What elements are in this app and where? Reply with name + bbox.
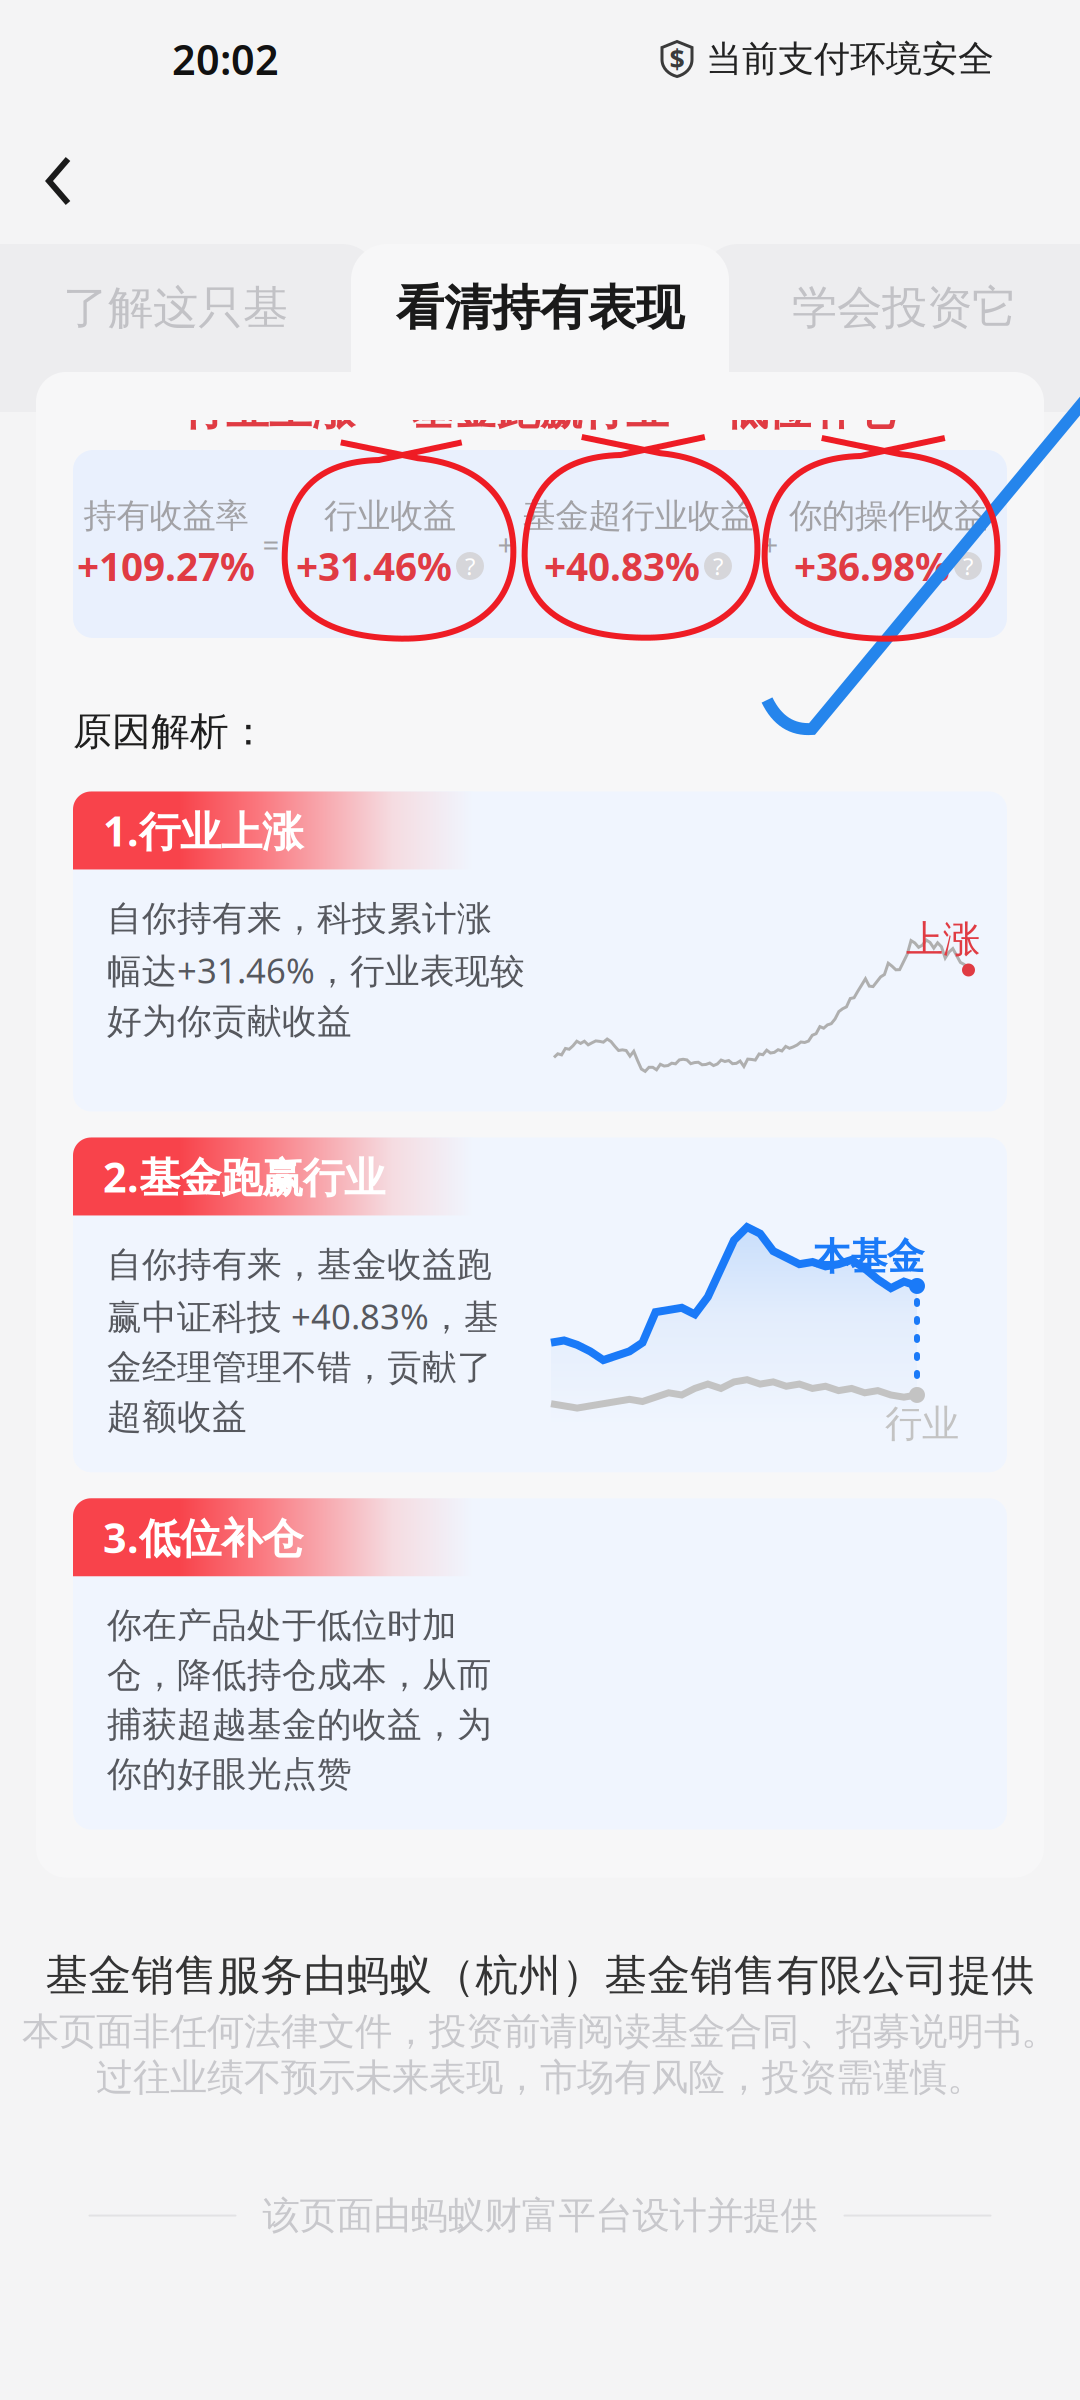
staticText: 幅达+31.46%，行业表现较: [107, 947, 525, 993]
staticText: 原因解析：: [73, 708, 268, 755]
staticText: 仓，降低持仓成本，从而: [107, 1654, 492, 1696]
staticText: 上涨: [906, 916, 980, 962]
staticText: 当前支付环境安全: [706, 37, 994, 81]
staticText: +: [761, 524, 778, 563]
staticText: 2.基金跑赢行业: [103, 1149, 385, 1204]
button[interactable]: 返回: [0, 126, 110, 236]
staticText: 本页面非任何法律文件，投资前请阅读基金合同、招募说明书。: [22, 2009, 1058, 2055]
staticText: 金经理管理不错，贡献了: [107, 1346, 492, 1389]
staticText: 你在产品处于低位时加: [107, 1604, 457, 1647]
staticText: 你的操作收益: [789, 495, 987, 536]
staticText: =: [262, 524, 279, 563]
staticText: 自你持有来，科技累计涨: [107, 897, 492, 940]
staticText: +109.27%: [77, 540, 255, 592]
staticText: 学会投资它: [792, 280, 1017, 336]
staticText: 低位补仓: [725, 384, 897, 436]
staticText: 基金销售服务由蚂蚁（杭州）基金销售有限公司提供: [45, 1949, 1034, 2002]
staticText: 该页面由蚂蚁财富平台设计并提供: [262, 2193, 817, 2239]
staticText: 20:02: [172, 32, 279, 86]
staticText: 行业上涨: [183, 384, 355, 436]
staticText: 过往业绩不预示未来表现，市场有风险，投资需谨慎。: [96, 2055, 984, 2101]
staticText: 1.行业上涨: [103, 803, 303, 858]
staticText: 了解这只基: [63, 280, 288, 336]
staticText: 基金跑赢行业: [411, 384, 669, 436]
button[interactable]: 学会投资它: [729, 244, 1080, 372]
staticText: 赢中证科技 +40.83%，基: [107, 1293, 499, 1339]
staticText: +: [497, 524, 514, 563]
staticText: 3.低位补仓: [103, 1510, 303, 1565]
staticText: 你的好眼光点赞: [107, 1753, 352, 1796]
staticText: 行业收益: [324, 495, 456, 536]
staticText: 自你持有来，基金收益跑: [107, 1243, 492, 1286]
staticText: +31.46%: [296, 540, 452, 592]
staticText: 基金超行业收益: [522, 495, 753, 536]
button[interactable]: 了解这只基: [0, 244, 351, 372]
staticText: 捕获超越基金的收益，为: [107, 1703, 492, 1746]
staticText: 好为你贡献收益: [107, 1000, 352, 1043]
button[interactable]: 看清持有表现: [351, 244, 729, 372]
staticText: +36.98%: [794, 540, 950, 592]
staticText: +40.83%: [544, 540, 700, 592]
staticText: $: [669, 41, 684, 77]
staticText: 本基金: [813, 1234, 924, 1280]
staticText: 看清持有表现: [396, 278, 684, 337]
staticText: 持有收益率: [83, 495, 248, 536]
staticText: ?: [465, 550, 475, 582]
staticText: 超额收益: [107, 1396, 247, 1438]
staticText: ?: [963, 550, 973, 582]
staticText: ?: [713, 550, 723, 582]
staticText: 行业: [885, 1401, 959, 1447]
